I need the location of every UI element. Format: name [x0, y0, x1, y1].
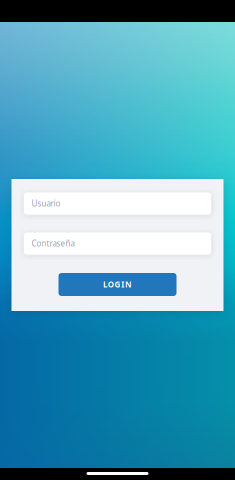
button[interactable]: Contraseña [23, 232, 211, 255]
staticText: LOGIN [103, 279, 132, 290]
button[interactable]: LOGIN [58, 273, 176, 296]
button[interactable]: Usuario [23, 192, 211, 215]
staticText: Usuario [31, 198, 60, 209]
staticText: Contraseña [31, 238, 74, 249]
